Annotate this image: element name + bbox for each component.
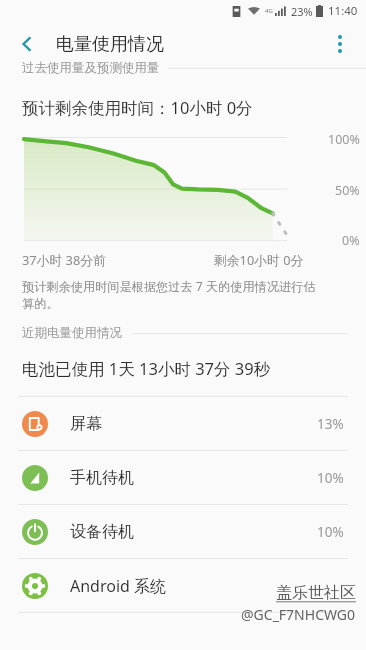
- button[interactable]: 设备待机: [0, 505, 366, 558]
- button[interactable]: More options: [322, 26, 358, 62]
- staticText: 50%: [335, 182, 360, 199]
- staticText: 电池已使用 1天 13小时 37分 39秒: [22, 357, 271, 380]
- staticText: 近期电量使用情况: [22, 325, 122, 341]
- staticText: 设备待机: [70, 522, 134, 542]
- staticText: 10%: [317, 523, 344, 541]
- staticText: Android 系统: [70, 575, 167, 597]
- staticText: 4G: [265, 7, 273, 15]
- staticText: 10%: [317, 469, 344, 487]
- staticText: 100%: [328, 131, 360, 148]
- button[interactable]: Back: [10, 27, 44, 61]
- staticText: 23%: [291, 4, 313, 19]
- staticText: 13%: [317, 415, 344, 433]
- button[interactable]: Android 系统: [0, 559, 366, 612]
- staticText: 过去使用量及预测使用量: [22, 60, 160, 76]
- staticText: 预计剩余使用时间是根据您过去 7 天的使用情况进行估 算的。: [22, 278, 316, 311]
- staticText: 屏幕: [70, 414, 102, 434]
- staticText: 0%: [342, 232, 360, 249]
- staticText: 盖乐世社区: [276, 583, 356, 603]
- staticText: 预计剩余使用时间：10小时 0分: [22, 96, 253, 119]
- staticText: @GC_F7NHCWG0: [241, 605, 356, 624]
- staticText: 剩余10小时 0分: [214, 251, 304, 268]
- staticText: 37小时 38分前: [22, 251, 106, 268]
- staticText: 手机待机: [70, 468, 134, 488]
- staticText: 11:40: [328, 3, 358, 19]
- staticText: 电量使用情况: [56, 33, 164, 56]
- button[interactable]: 屏幕: [0, 397, 366, 450]
- button[interactable]: 手机待机: [0, 451, 366, 504]
